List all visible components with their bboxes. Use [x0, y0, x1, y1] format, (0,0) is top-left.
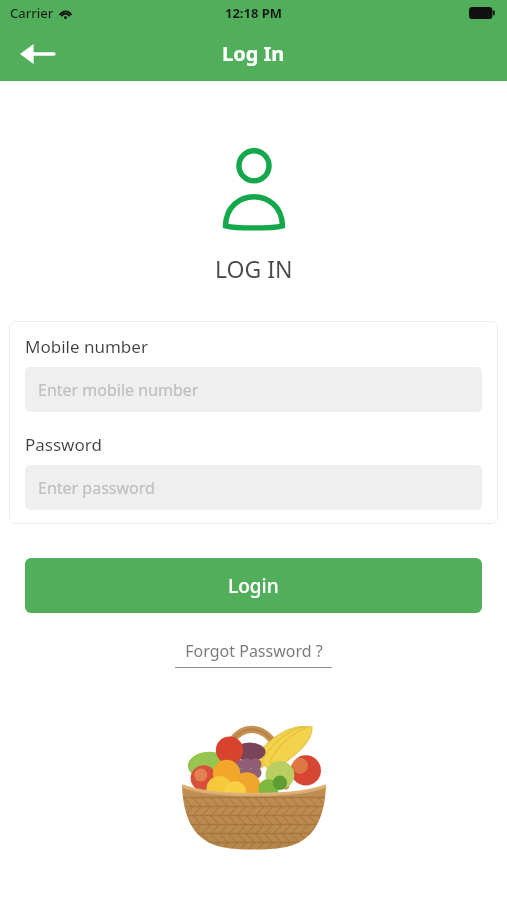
staticText: Enter password: [38, 477, 155, 499]
staticText: Carrier: [10, 4, 54, 22]
staticText: LOG IN: [215, 253, 293, 284]
staticText: Login: [228, 573, 279, 599]
staticText: Mobile number: [25, 335, 148, 358]
staticText: Enter mobile number: [38, 379, 199, 401]
button[interactable]: Enter password: [25, 465, 482, 510]
button[interactable]: Login: [25, 558, 482, 613]
staticText: Forgot Password ?: [185, 640, 323, 662]
staticText: Log In: [222, 40, 285, 67]
button[interactable]: Back: [16, 33, 58, 75]
button[interactable]: Forgot Password ?: [169, 638, 338, 670]
button[interactable]: Enter mobile number: [25, 367, 482, 412]
staticText: 12:18 PM: [225, 4, 283, 22]
staticText: Password: [25, 433, 102, 456]
